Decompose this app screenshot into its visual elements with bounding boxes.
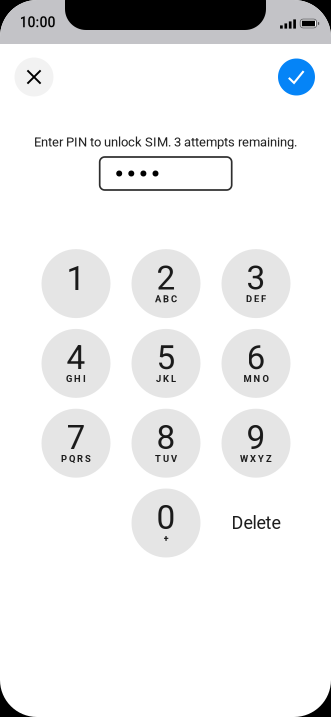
staticText: 0 (156, 498, 175, 537)
button[interactable]: 0 (131, 488, 200, 557)
button[interactable]: 6 (221, 329, 290, 398)
button[interactable]: 1 (41, 249, 110, 318)
staticText: 1 (66, 259, 85, 298)
staticText: W X Y Z (240, 453, 272, 464)
staticText: 9 (246, 418, 265, 457)
staticText: 8 (156, 418, 175, 457)
staticText: 2 (156, 259, 175, 298)
button[interactable]: 7 (41, 409, 110, 478)
staticText: G H I (66, 373, 86, 384)
button[interactable]: Confirm (274, 55, 318, 99)
button[interactable]: Delete (211, 488, 301, 557)
button[interactable]: 8 (131, 409, 200, 478)
button[interactable]: 2 (131, 249, 200, 318)
button[interactable]: 5 (131, 329, 200, 398)
button[interactable]: 4 (41, 329, 110, 398)
staticText: D E F (246, 294, 266, 305)
staticText: 7 (66, 418, 85, 457)
staticText: Enter PIN to unlock SIM. 3 attempts rema… (34, 134, 297, 150)
staticText: 6 (246, 338, 265, 377)
staticText: P Q R S (61, 453, 91, 464)
staticText: T U V (155, 453, 177, 464)
staticText: J K L (156, 373, 176, 384)
staticText: 3 (246, 259, 265, 298)
button[interactable]: 9 (221, 409, 290, 478)
button[interactable]: 3 (221, 249, 290, 318)
staticText: 10:00 (19, 14, 55, 31)
button[interactable]: Close (12, 55, 56, 99)
staticText: 4 (66, 338, 85, 377)
staticText: M N O (243, 373, 268, 384)
staticText: Delete (231, 512, 280, 533)
staticText: A B C (155, 294, 177, 305)
staticText: + (163, 533, 168, 544)
staticText: 5 (156, 338, 175, 377)
